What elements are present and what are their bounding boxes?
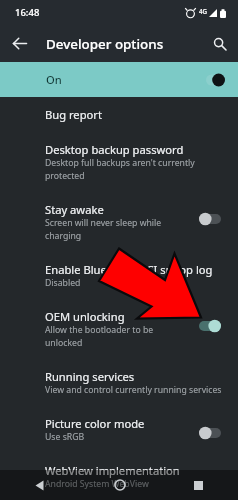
staticText: WebView implementation [45, 463, 180, 478]
button[interactable]: Home [80, 470, 159, 500]
button[interactable]: Navigate up [7, 31, 32, 56]
button[interactable]: Bug report [0, 97, 238, 132]
staticText: Desktop full backups aren't currently pr… [45, 157, 228, 182]
button[interactable]: Desktop backup password [0, 132, 238, 192]
staticText: View and control currently running servi… [45, 384, 222, 396]
button[interactable]: Search [207, 31, 232, 56]
staticText: Picture color mode [45, 416, 145, 431]
button[interactable]: Stay awake [0, 192, 238, 252]
staticText: Android System WebView [45, 478, 149, 490]
staticText: Running services [45, 369, 135, 384]
staticText: Desktop backup password [45, 142, 184, 157]
staticText: 16:48 [15, 6, 40, 19]
button[interactable]: Recent apps [159, 470, 238, 500]
staticText: 4G [199, 7, 208, 15]
staticText: Allow the bootloader to be unlocked [45, 324, 190, 349]
staticText: OEM unlocking [45, 309, 125, 324]
button[interactable]: Picture color mode [0, 406, 238, 453]
staticText: Developer options [46, 35, 164, 53]
staticText: Bug report [45, 107, 102, 122]
staticText: Use sRGB [45, 431, 85, 443]
button[interactable]: OEM unlocking [0, 299, 238, 359]
staticText: Screen will never sleep while charging [45, 217, 190, 242]
staticText: Stay awake [45, 202, 104, 217]
button[interactable]: Back [0, 470, 79, 500]
button[interactable]: Running services [0, 359, 238, 406]
button[interactable]: On [0, 62, 238, 97]
staticText: Disabled [45, 277, 81, 289]
staticText: Enable Bluetooth HCI snoop log [45, 262, 213, 277]
staticText: On [46, 72, 62, 87]
button[interactable]: WebView implementation [0, 453, 238, 500]
button[interactable]: Enable Bluetooth HCI snoop log [0, 252, 238, 299]
